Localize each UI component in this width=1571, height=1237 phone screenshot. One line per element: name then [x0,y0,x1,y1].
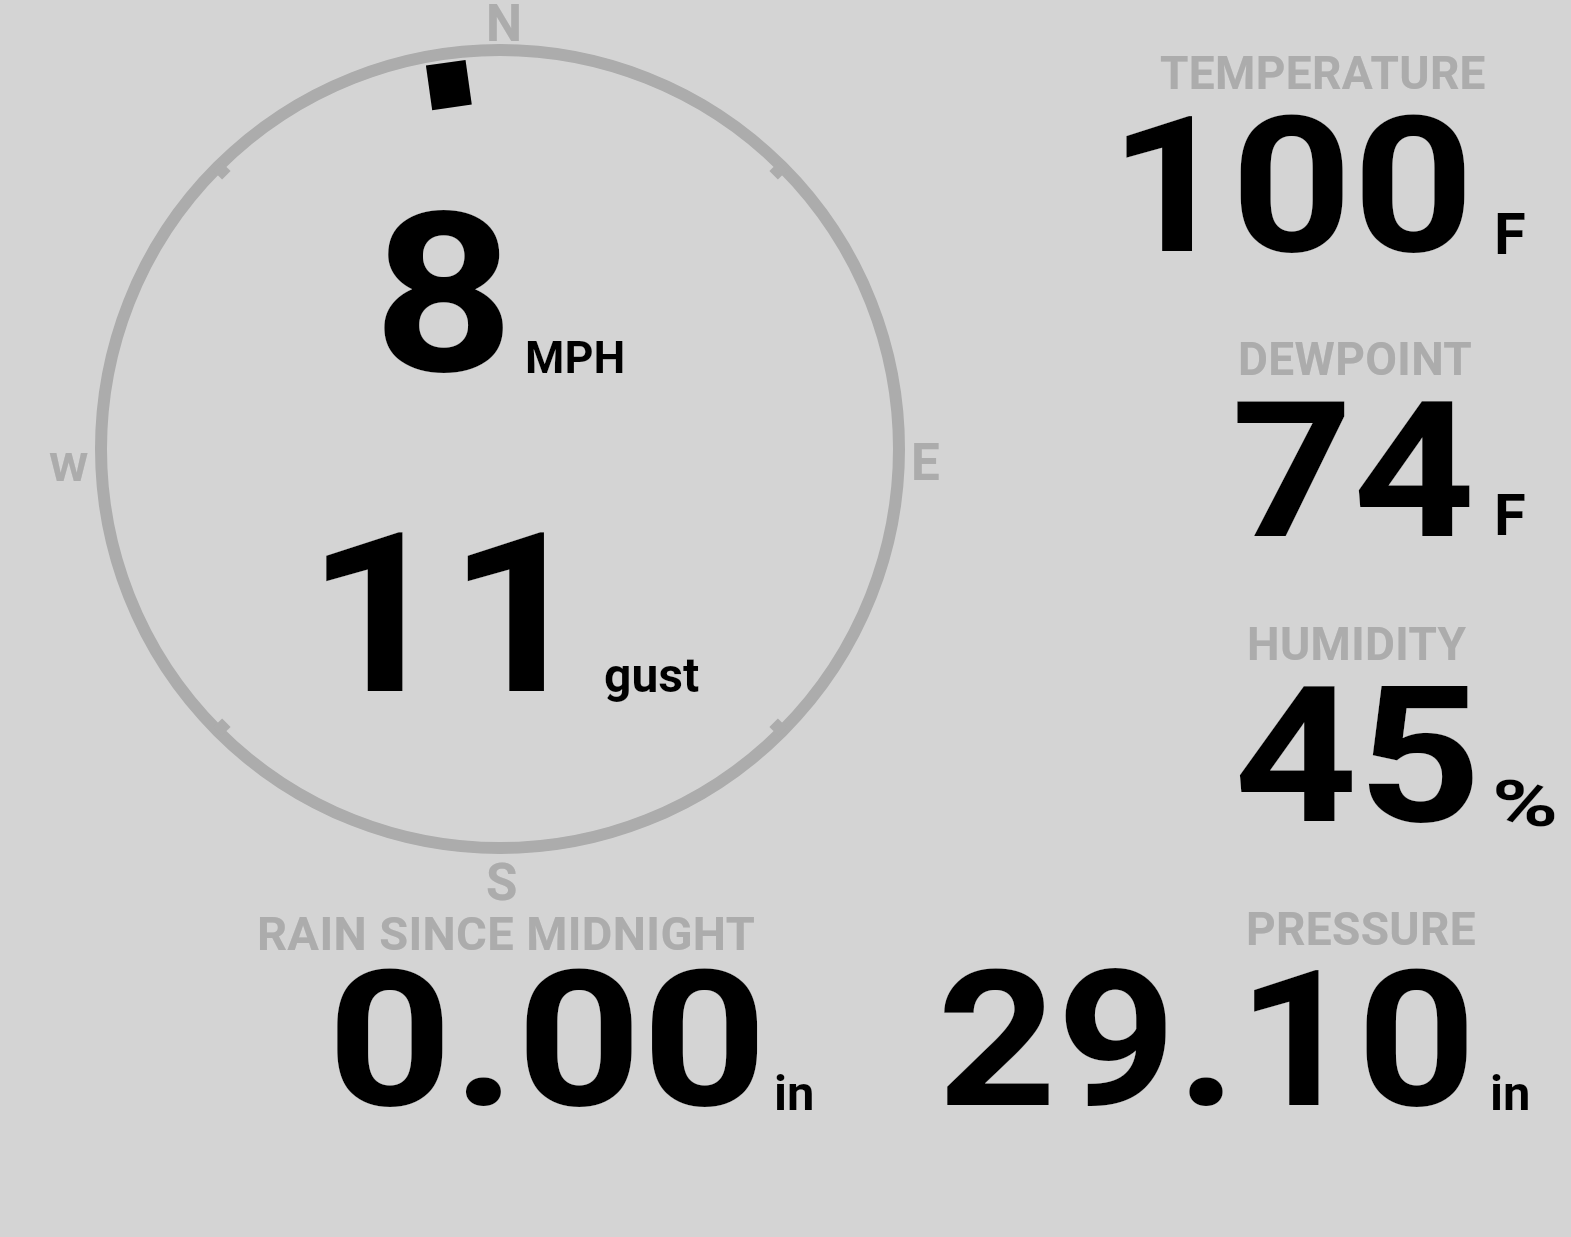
staticText: 45 [1234,645,1483,868]
staticText: gust [604,647,700,703]
staticText: TEMPERATURE [1160,46,1486,100]
button[interactable]: Rain since midnight 0.00 inches [230,890,830,1130]
button[interactable]: Pressure 29.10 inches [900,890,1560,1130]
staticText: E [911,433,941,493]
staticText: % [1492,767,1559,842]
staticText: F [1494,481,1526,549]
staticText: W [49,446,89,491]
staticText: in [774,1065,815,1122]
staticText: RAIN SINCE MIDNIGHT [257,906,756,961]
staticText: PRESSURE [1246,902,1476,956]
staticText: F [1494,200,1526,268]
button[interactable]: Wind 8 miles per hour, gusting 11 [40,10,960,910]
staticText: 8 [373,165,515,425]
staticText: DEWPOINT [1238,332,1473,386]
staticText: MPH [525,331,626,384]
staticText: 11 [306,485,589,745]
staticText: HUMIDITY [1247,617,1467,671]
button[interactable]: Temperature 100 degrees Fahrenheit [1090,30,1560,290]
button[interactable]: Humidity 45 percent [1090,600,1560,840]
button[interactable]: Dewpoint 74 degrees Fahrenheit [1090,310,1560,560]
staticText: in [1490,1065,1531,1122]
staticText: 100 [1109,75,1475,298]
staticText: 29.10 [937,929,1477,1152]
staticText: 0.00 [327,929,768,1152]
staticText: 74 [1231,360,1476,583]
staticText: N [486,0,523,54]
staticText: S [486,853,518,913]
